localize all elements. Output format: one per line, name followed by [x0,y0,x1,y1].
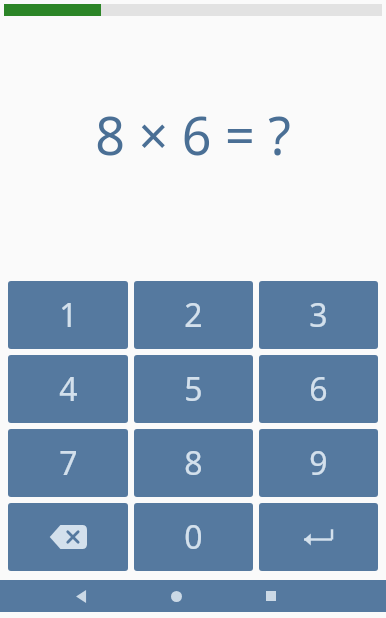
staticText: 6 [309,367,328,411]
button[interactable]: 2 [134,281,253,349]
button[interactable]: 0 [134,503,253,571]
button[interactable]: Back [64,580,98,612]
staticText: 3 [309,293,328,337]
staticText: 1 [59,293,78,337]
staticText: 2 [184,293,203,337]
button[interactable]: 7 [8,429,128,497]
button[interactable]: 3 [259,281,378,349]
staticText: 8 × 6 = ? [95,99,291,170]
button[interactable]: Backspace [8,503,128,571]
button[interactable]: 5 [134,355,253,423]
button[interactable]: Enter [259,503,378,571]
staticText: 5 [184,367,203,411]
button[interactable]: 4 [8,355,128,423]
staticText: 7 [59,441,78,485]
button[interactable]: 6 [259,355,378,423]
staticText: 0 [184,515,203,559]
staticText: 9 [309,441,328,485]
button[interactable]: 8 [134,429,253,497]
button[interactable]: Home [159,580,193,612]
button[interactable]: 1 [8,281,128,349]
staticText: 4 [59,367,78,411]
button[interactable]: Recent apps [254,580,288,612]
button[interactable]: 9 [259,429,378,497]
staticText: 8 [184,441,203,485]
